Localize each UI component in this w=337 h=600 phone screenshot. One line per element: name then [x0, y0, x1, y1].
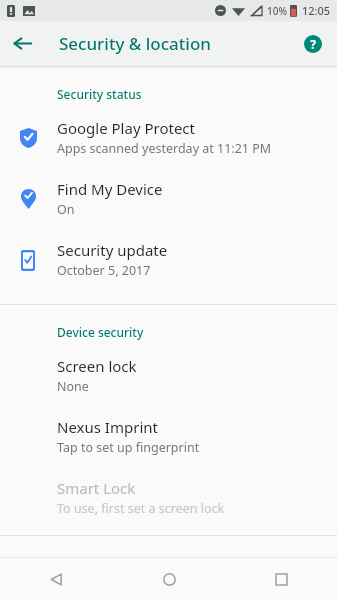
button[interactable]: Navigate up	[0, 21, 45, 66]
staticText: To use, first set a screen lock	[57, 500, 225, 517]
button[interactable]: Smart Lock	[0, 467, 337, 528]
button[interactable]: Home	[113, 558, 225, 600]
button[interactable]: Screen lock	[0, 345, 337, 406]
staticText: October 5, 2017	[57, 262, 151, 279]
staticText: Find My Device	[57, 179, 163, 199]
button[interactable]: Find My Device	[0, 168, 337, 229]
staticText: On	[57, 201, 75, 218]
button[interactable]: Back	[0, 558, 113, 600]
staticText: Tap to set up fingerprint	[57, 439, 200, 456]
staticText: Google Play Protect	[57, 118, 195, 138]
button[interactable]: Google Play Protect	[0, 107, 337, 168]
staticText: Security update	[57, 240, 168, 260]
button[interactable]: Security status	[0, 69, 337, 107]
staticText: None	[57, 378, 89, 395]
staticText: ?	[310, 36, 316, 52]
staticText: Nexus Imprint	[57, 417, 158, 437]
staticText: Apps scanned yesterday at 11:21 PM	[57, 140, 272, 157]
staticText: Security & location	[59, 32, 211, 55]
button[interactable]: Recent apps	[225, 558, 337, 600]
button[interactable]: Nexus Imprint	[0, 406, 337, 467]
staticText: 10%	[267, 4, 287, 18]
button[interactable]: Device security	[0, 305, 337, 345]
staticText: Security status	[57, 86, 142, 102]
staticText: Smart Lock	[57, 478, 136, 498]
staticText: 12:05	[302, 3, 331, 18]
staticText: Screen lock	[57, 356, 137, 376]
staticText: Device security	[57, 324, 144, 340]
button[interactable]: Help	[290, 21, 335, 66]
button[interactable]: Security update	[0, 229, 337, 290]
